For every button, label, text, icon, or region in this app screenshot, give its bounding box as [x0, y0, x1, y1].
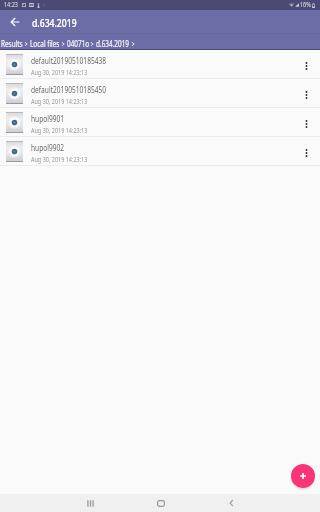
button[interactable]: default20190510185438: [0, 50, 320, 79]
button[interactable]: Add new item: [291, 464, 315, 488]
button[interactable]: hupol9902: [0, 137, 320, 166]
staticText: Aug 30, 2019 14:23:13: [31, 68, 88, 78]
staticText: Aug 30, 2019 14:23:13: [31, 97, 88, 107]
staticText: d.634.2019: [32, 15, 77, 30]
button[interactable]: Recent apps: [76, 494, 104, 512]
button[interactable]: More options: [292, 108, 320, 136]
staticText: default20190510185438: [31, 55, 107, 67]
staticText: hupol9901: [31, 113, 64, 125]
button[interactable]: Local files: [30, 38, 60, 49]
staticText: 04071o: [67, 38, 89, 49]
staticText: Results: [1, 38, 23, 49]
staticText: Aug 30, 2019 14:23:13: [31, 155, 88, 165]
button[interactable]: d.634.2019: [96, 38, 130, 49]
staticText: hupol9902: [31, 142, 64, 154]
button[interactable]: More options: [292, 79, 320, 107]
button[interactable]: Home: [146, 494, 175, 512]
staticText: default20190510185450: [31, 84, 107, 96]
button[interactable]: hupol9901: [0, 108, 320, 137]
button[interactable]: Back: [217, 494, 245, 512]
button[interactable]: More options: [292, 50, 320, 78]
staticText: Local files: [30, 38, 60, 49]
staticText: Aug 30, 2019 14:23:13: [31, 126, 88, 136]
button[interactable]: Results: [1, 38, 23, 49]
button[interactable]: Navigate up: [0, 10, 29, 33]
staticText: 14:23: [4, 0, 18, 10]
staticText: d.634.2019: [96, 38, 130, 49]
button[interactable]: default20190510185450: [0, 79, 320, 108]
staticText: 16%: [300, 0, 311, 10]
button[interactable]: 04071o: [67, 38, 89, 49]
button[interactable]: More options: [292, 137, 320, 165]
